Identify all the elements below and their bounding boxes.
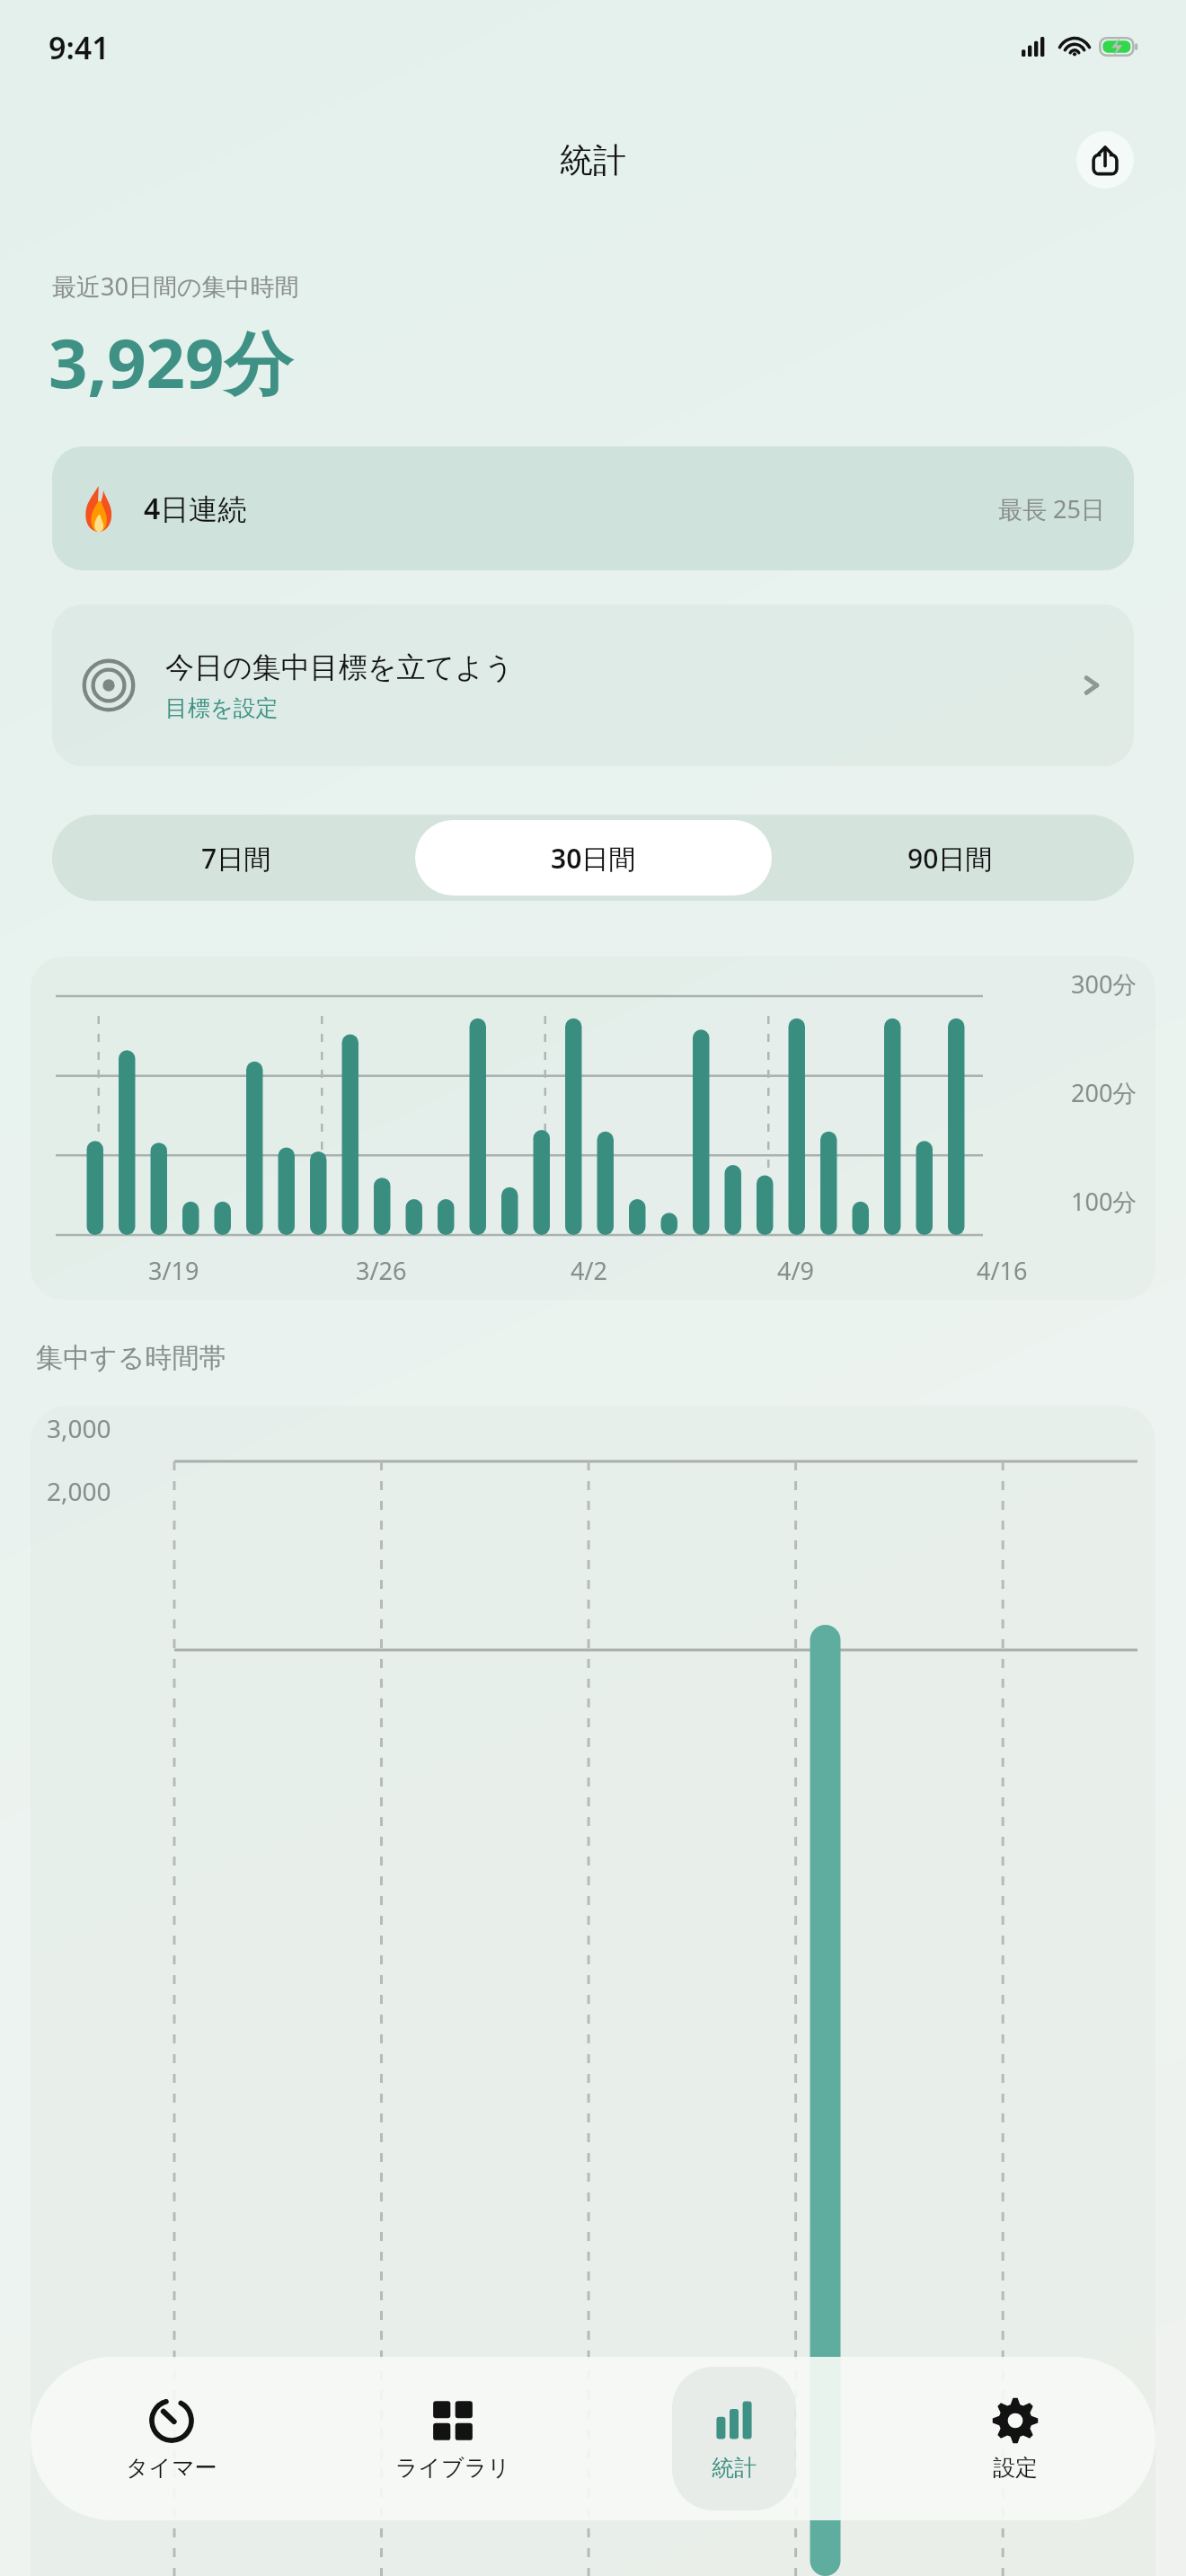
staticText: 4/9 bbox=[777, 1254, 814, 1287]
staticText: 集中する時間帯 bbox=[36, 1341, 226, 1375]
button[interactable]: 7日間 bbox=[58, 820, 415, 895]
button[interactable]: タイマー bbox=[110, 2367, 234, 2510]
staticText: 4/16 bbox=[977, 1254, 1028, 1287]
staticText: 3,929分 bbox=[49, 315, 293, 409]
staticText: 3,000 bbox=[47, 1411, 111, 1445]
staticText: 9:41 bbox=[49, 27, 110, 68]
button[interactable]: 今日の集中目標を立てよう bbox=[52, 604, 1134, 766]
staticText: 2,000 bbox=[47, 1474, 111, 1508]
button[interactable]: 4日連続 bbox=[52, 446, 1134, 570]
button[interactable]: 共有 bbox=[1076, 131, 1134, 189]
staticText: 4/2 bbox=[571, 1254, 607, 1287]
staticText: 30日間 bbox=[551, 840, 636, 877]
staticText: 7日間 bbox=[201, 840, 271, 877]
staticText: 200分 bbox=[1071, 1076, 1137, 1109]
button[interactable]: 30日間 bbox=[415, 820, 772, 895]
staticText: 設定 bbox=[993, 2454, 1038, 2482]
button[interactable]: 統計 bbox=[672, 2367, 796, 2510]
staticText: ライブラリ bbox=[395, 2454, 510, 2482]
staticText: 3/19 bbox=[148, 1254, 199, 1287]
staticText: タイマー bbox=[126, 2454, 217, 2482]
button[interactable]: 設定 bbox=[953, 2367, 1077, 2510]
button[interactable]: 90日間 bbox=[772, 820, 1128, 895]
staticText: 今日の集中目標を立てよう bbox=[165, 649, 514, 685]
staticText: 4日連続 bbox=[144, 489, 247, 528]
button[interactable]: ライブラリ bbox=[391, 2367, 515, 2510]
staticText: 最長 25日 bbox=[998, 492, 1105, 525]
staticText: 最近30日間の集中時間 bbox=[52, 269, 299, 303]
staticText: 3/26 bbox=[356, 1254, 407, 1287]
staticText: 300分 bbox=[1071, 967, 1137, 1001]
staticText: 統計 bbox=[712, 2454, 757, 2482]
staticText: 目標を設定 bbox=[165, 694, 279, 722]
staticText: 100分 bbox=[1071, 1185, 1137, 1218]
staticText: 統計 bbox=[560, 139, 626, 181]
staticText: 90日間 bbox=[907, 840, 993, 877]
